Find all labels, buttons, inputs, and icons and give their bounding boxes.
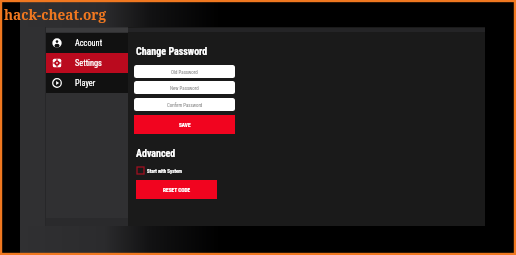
staticText: Change Password <box>136 46 208 58</box>
button[interactable]: SAVE <box>134 115 235 134</box>
staticText: Start with System <box>147 168 183 174</box>
button[interactable]: Player <box>46 73 128 93</box>
button[interactable]: Settings <box>46 53 128 73</box>
staticText: Account <box>75 38 103 48</box>
staticText: hack-cheat.org <box>4 5 106 24</box>
button[interactable]: Confirm Password <box>134 98 235 111</box>
staticText: Settings <box>75 58 102 68</box>
button[interactable]: New Password <box>134 81 235 94</box>
staticText: SAVE <box>179 122 191 128</box>
staticText: RESET CODE <box>163 187 191 193</box>
button[interactable]: Start with System <box>137 167 183 174</box>
button[interactable]: Account <box>46 33 128 53</box>
staticText: Player <box>75 78 96 88</box>
staticText: Confirm Password <box>167 102 203 108</box>
button[interactable]: Old Password <box>134 65 235 78</box>
staticText: Old Password <box>171 69 198 75</box>
button[interactable]: RESET CODE <box>136 180 217 199</box>
staticText: Advanced <box>136 148 176 160</box>
staticText: New Password <box>170 85 199 91</box>
